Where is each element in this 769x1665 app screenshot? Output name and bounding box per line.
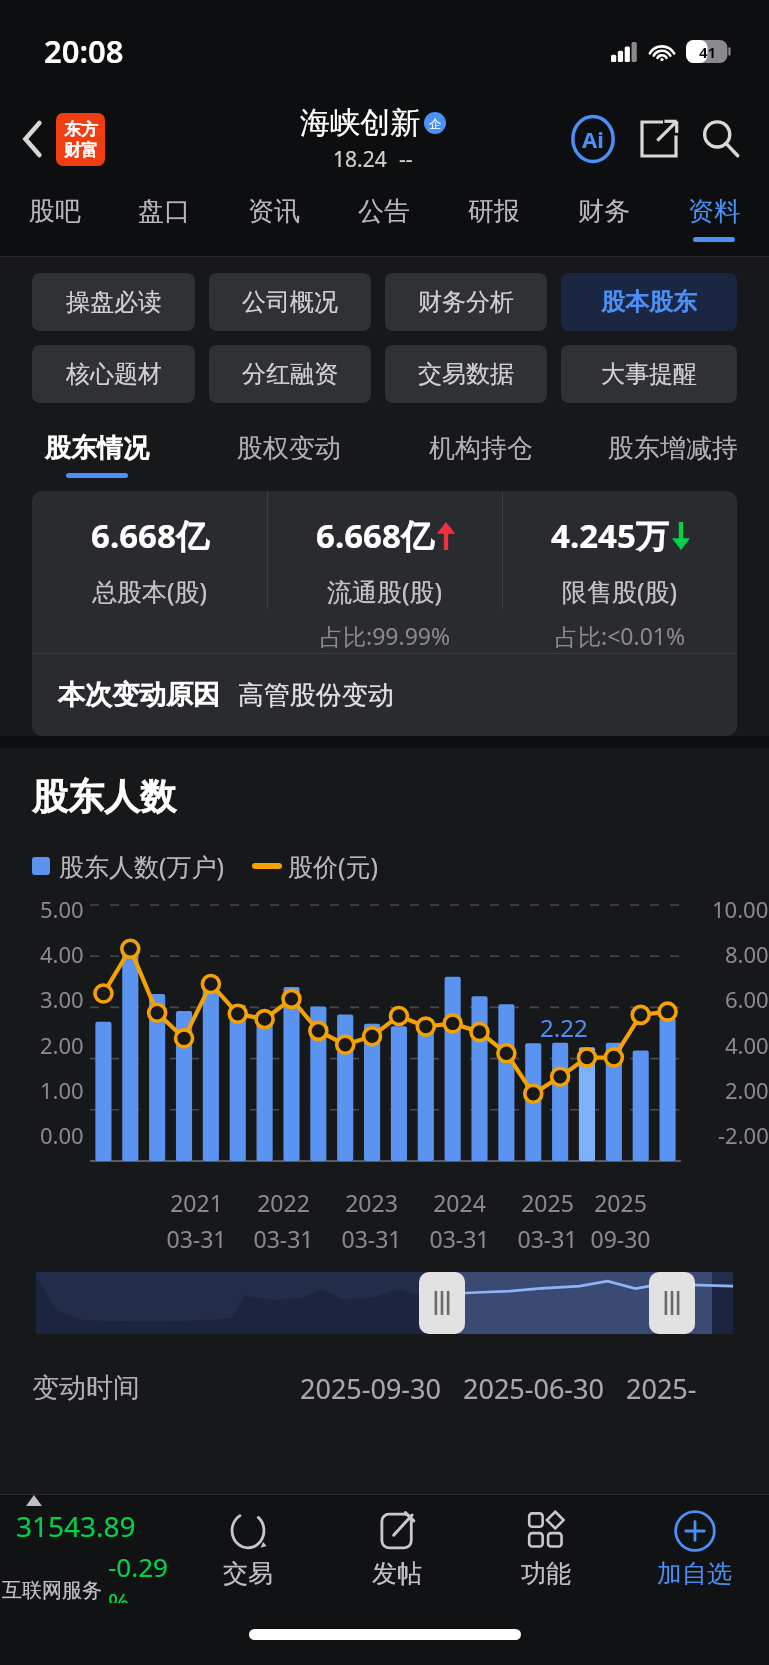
staticText: 股东人数: [32, 774, 176, 819]
button[interactable]: 发帖: [322, 1495, 471, 1603]
staticText: 2024: [433, 1187, 486, 1218]
button[interactable]: 财务分析: [385, 273, 547, 331]
staticText: 2.00: [725, 1075, 769, 1105]
staticText: 5.00: [40, 894, 84, 924]
staticText: 东方: [64, 119, 98, 140]
button[interactable]: 公司概况: [209, 273, 371, 331]
button[interactable]: Search: [695, 113, 747, 165]
staticText: 占比:<0.01%: [555, 620, 686, 651]
staticText: -2.00: [718, 1120, 769, 1150]
staticText: 流通股(股): [327, 574, 443, 608]
staticText: 限售股(股): [562, 574, 678, 608]
button[interactable]: Share: [633, 113, 685, 165]
staticText: --: [399, 145, 413, 174]
staticText: 6.00: [725, 984, 769, 1014]
staticText: 03-31: [517, 1223, 578, 1254]
button[interactable]: 股吧: [0, 180, 109, 256]
button[interactable]: 股东情况: [0, 419, 193, 491]
button[interactable]: 31543.89: [0, 1495, 173, 1603]
staticText: 功能: [521, 1558, 571, 1589]
staticText: 发帖: [372, 1558, 422, 1589]
staticText: 6.668亿: [316, 513, 434, 558]
staticText: 03-31: [253, 1223, 314, 1254]
button[interactable]: 本次变动原因: [32, 654, 737, 736]
button[interactable]: 加自选: [620, 1495, 769, 1603]
staticText: 8.00: [725, 939, 769, 969]
button[interactable]: 机构持仓: [385, 419, 577, 491]
staticText: 公司概况: [242, 287, 338, 317]
staticText: Ai: [582, 124, 604, 154]
staticText: 03-31: [341, 1223, 402, 1254]
staticText: 31543.89: [16, 1507, 136, 1545]
staticText: 总股本(股): [92, 574, 208, 608]
button[interactable]: 大事提醒: [561, 345, 737, 403]
staticText: 股本股东: [601, 287, 697, 317]
button[interactable]: Range handle: [419, 1272, 465, 1334]
staticText: 操盘必读: [66, 287, 162, 317]
staticText: 03-31: [429, 1223, 490, 1254]
staticText: 4.00: [40, 939, 84, 969]
button[interactable]: 股本股东: [561, 273, 737, 331]
staticText: 本次变动原因: [58, 678, 220, 712]
staticText: 6.668亿: [91, 513, 209, 558]
staticText: 股东情况: [45, 432, 149, 465]
staticText: 2025: [521, 1187, 574, 1218]
staticText: 03-31: [166, 1223, 227, 1254]
staticText: 研报: [468, 195, 520, 228]
staticText: 股价(元): [288, 849, 379, 883]
staticText: 高管股份变动: [238, 679, 394, 712]
button[interactable]: 交易: [173, 1495, 322, 1603]
staticText: 0.00: [40, 1120, 84, 1150]
button[interactable]: 核心题材: [32, 345, 195, 403]
staticText: 1.00: [40, 1075, 84, 1105]
staticText: 互联网服务: [2, 1578, 102, 1603]
staticText: 10.00: [712, 894, 769, 924]
staticText: 20:08: [44, 30, 124, 72]
button[interactable]: Back: [10, 116, 56, 162]
staticText: 股东增减持: [608, 432, 738, 465]
staticText: 资讯: [248, 195, 300, 228]
button[interactable]: 交易数据: [385, 345, 547, 403]
staticText: 核心题材: [66, 359, 162, 389]
staticText: 占比:99.99%: [320, 620, 451, 651]
button[interactable]: 公告: [329, 180, 439, 256]
staticText: 2023: [345, 1187, 398, 1218]
staticText: 2025-: [626, 1370, 697, 1407]
staticText: 财务分析: [418, 287, 514, 317]
staticText: 股吧: [29, 195, 81, 228]
button[interactable]: 分红融资: [209, 345, 371, 403]
staticText: 3.00: [40, 984, 84, 1014]
button[interactable]: AI: [567, 113, 619, 165]
staticText: 企: [429, 116, 441, 131]
staticText: 41: [699, 42, 717, 62]
staticText: 变动时间: [32, 1371, 140, 1405]
staticText: 海峡创新: [300, 104, 420, 142]
staticText: 2025-06-30: [463, 1370, 604, 1407]
button[interactable]: 资讯: [219, 180, 329, 256]
staticText: 交易数据: [418, 359, 514, 389]
button[interactable]: 操盘必读: [32, 273, 195, 331]
staticText: 2025: [594, 1187, 647, 1218]
button[interactable]: 股权变动: [193, 419, 385, 491]
staticText: 公告: [358, 195, 410, 228]
staticText: 4.245万: [551, 513, 669, 558]
staticText: 09-30: [590, 1223, 651, 1254]
button[interactable]: 功能: [471, 1495, 620, 1603]
staticText: 机构持仓: [429, 432, 533, 465]
staticText: 2.22: [540, 1011, 588, 1044]
button[interactable]: 东方财富: [56, 113, 105, 166]
button[interactable]: 资料: [659, 180, 769, 256]
staticText: 股东人数(万户): [59, 849, 225, 883]
staticText: 财富: [64, 140, 98, 161]
staticText: 股权变动: [237, 432, 341, 465]
staticText: 4.00: [725, 1030, 769, 1060]
staticText: -0.29%: [108, 1549, 173, 1603]
button[interactable]: 股东增减持: [577, 419, 769, 491]
button[interactable]: 研报: [439, 180, 549, 256]
button[interactable]: 盘口: [109, 180, 219, 256]
button[interactable]: 财务: [549, 180, 659, 256]
staticText: 加自选: [657, 1558, 732, 1589]
staticText: 资料: [688, 195, 740, 228]
button[interactable]: Range handle: [649, 1272, 695, 1334]
staticText: 18.24: [333, 145, 387, 174]
